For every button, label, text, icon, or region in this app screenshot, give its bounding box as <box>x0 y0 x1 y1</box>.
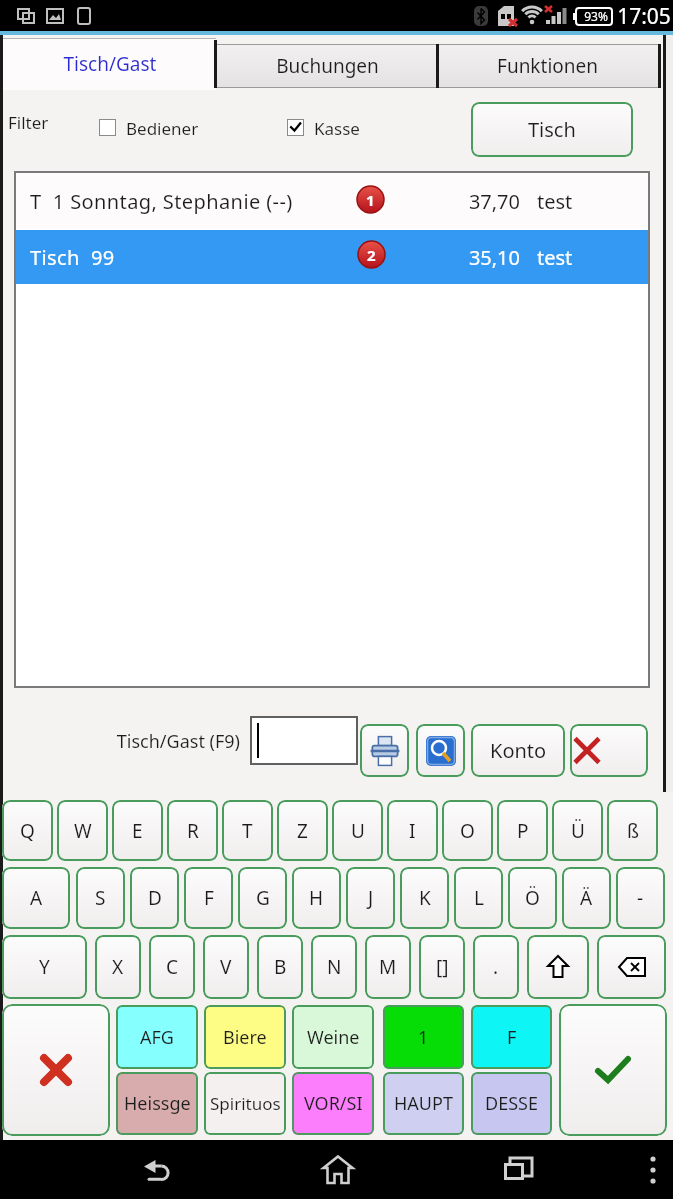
button[interactable] <box>310 1150 366 1190</box>
button[interactable] <box>16 230 648 284</box>
staticText: Buchungen <box>240 53 415 79</box>
staticText: O <box>460 818 475 844</box>
button[interactable]: U <box>332 800 383 861</box>
button[interactable]: F <box>471 1005 552 1069</box>
button[interactable]: Z <box>277 800 328 861</box>
button[interactable]: P <box>497 800 548 861</box>
button[interactable]: D <box>130 867 179 929</box>
staticText: G <box>256 885 270 911</box>
button[interactable]: X <box>95 935 141 999</box>
button[interactable]: G <box>238 867 287 929</box>
staticText: AFG <box>140 1025 174 1050</box>
button[interactable] <box>490 1150 546 1190</box>
button[interactable]: - <box>616 867 665 929</box>
button[interactable]: T <box>222 800 273 861</box>
button[interactable] <box>99 119 116 136</box>
button[interactable] <box>638 1150 668 1190</box>
button[interactable]: O <box>442 800 493 861</box>
staticText: DESSE <box>485 1091 538 1116</box>
staticText: B <box>274 954 287 980</box>
button[interactable]: Tisch <box>471 102 633 157</box>
button[interactable]: Biere <box>204 1005 286 1069</box>
button[interactable] <box>16 173 648 229</box>
staticText: Kasse <box>314 117 384 140</box>
button[interactable] <box>559 1004 667 1136</box>
staticText: 37,70 <box>440 188 520 214</box>
button[interactable] <box>3 38 216 90</box>
button[interactable]: N <box>311 935 357 999</box>
staticText: R <box>187 818 199 844</box>
button[interactable]: Heissge <box>116 1072 198 1135</box>
staticText: Bediener <box>126 117 226 140</box>
staticText: H <box>309 885 324 911</box>
button[interactable]: Q <box>2 800 53 861</box>
button[interactable]: 1 <box>383 1005 464 1069</box>
button[interactable]: AFG <box>116 1005 198 1069</box>
staticText: . <box>493 954 499 980</box>
button[interactable]: DESSE <box>471 1072 552 1135</box>
staticText: F <box>507 1025 517 1050</box>
button[interactable]: Konto <box>471 724 565 777</box>
staticText: W <box>74 818 92 844</box>
button[interactable]: VOR/SI <box>292 1072 374 1135</box>
staticText: HAUPT <box>394 1091 453 1116</box>
button[interactable] <box>287 119 304 136</box>
button[interactable] <box>416 724 465 777</box>
button[interactable]: V <box>203 935 249 999</box>
staticText: - <box>637 885 644 911</box>
button[interactable]: A <box>2 867 70 929</box>
staticText: Ä <box>580 885 593 911</box>
staticText: V <box>220 954 232 980</box>
staticText: Ö <box>525 885 540 911</box>
button[interactable]: Ö <box>508 867 557 929</box>
button[interactable]: Weine <box>292 1005 374 1069</box>
staticText: Tisch 99 <box>30 244 115 271</box>
button[interactable] <box>2 1004 110 1136</box>
staticText: Q <box>20 818 35 844</box>
button[interactable] <box>527 935 589 999</box>
button[interactable]: . <box>473 935 519 999</box>
button[interactable]: I <box>387 800 438 861</box>
button[interactable]: J <box>346 867 395 929</box>
button[interactable]: [] <box>419 935 465 999</box>
staticText: X <box>112 954 124 980</box>
button[interactable] <box>360 724 409 777</box>
button[interactable]: H <box>292 867 341 929</box>
staticText: Ü <box>571 818 585 844</box>
button[interactable]: M <box>365 935 411 999</box>
button[interactable]: Spirituos <box>204 1072 286 1135</box>
button[interactable]: Ü <box>552 800 603 861</box>
button[interactable] <box>130 1150 186 1190</box>
staticText: 17:05 <box>613 2 673 29</box>
staticText: Funktionen <box>460 53 635 79</box>
button[interactable]: R <box>167 800 218 861</box>
staticText: Biere <box>223 1025 267 1050</box>
staticText: Spirituos <box>210 1092 281 1115</box>
button[interactable]: K <box>400 867 449 929</box>
staticText: S <box>95 885 106 911</box>
staticText: K <box>419 885 431 911</box>
button[interactable]: F <box>184 867 233 929</box>
staticText: Y <box>39 954 50 980</box>
button[interactable] <box>570 724 648 777</box>
button[interactable] <box>597 935 666 999</box>
staticText: N <box>327 954 342 980</box>
button[interactable] <box>439 44 658 88</box>
staticText: 2 <box>367 245 376 265</box>
button[interactable]: HAUPT <box>383 1072 464 1135</box>
button[interactable]: E <box>112 800 163 861</box>
button[interactable]: ß <box>607 800 658 861</box>
staticText: J <box>368 885 374 911</box>
button[interactable]: C <box>149 935 195 999</box>
button[interactable]: B <box>257 935 303 999</box>
button[interactable] <box>250 716 358 765</box>
button[interactable]: Y <box>2 935 87 999</box>
button[interactable]: Ä <box>562 867 611 929</box>
staticText: P <box>517 818 529 844</box>
button[interactable]: S <box>76 867 125 929</box>
button[interactable]: W <box>57 800 108 861</box>
staticText: Z <box>297 818 308 844</box>
button[interactable] <box>216 44 436 88</box>
staticText: T <box>242 818 253 844</box>
button[interactable]: L <box>454 867 503 929</box>
